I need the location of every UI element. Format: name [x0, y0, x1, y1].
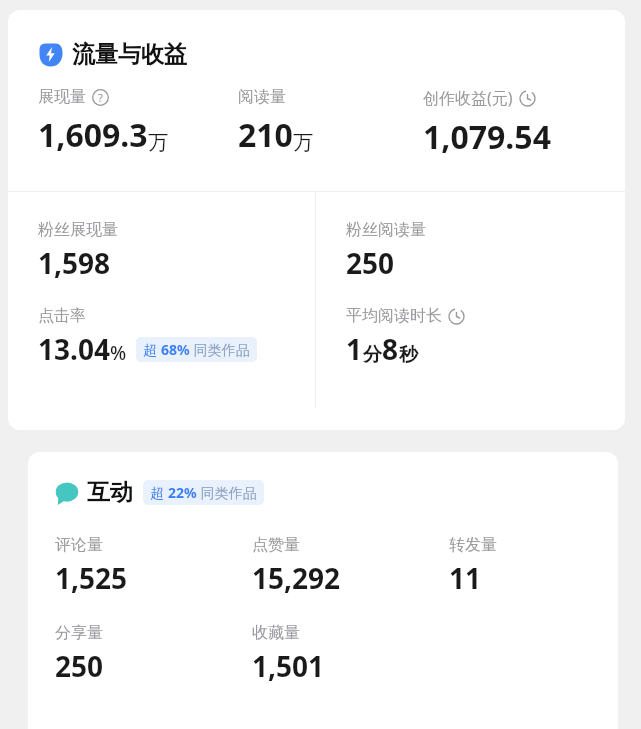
staticText: 同类作品 [197, 483, 257, 502]
button[interactable]: 超 [136, 337, 257, 362]
staticText: 评论量 [55, 535, 103, 555]
staticText: 粉丝阅读量 [346, 220, 426, 240]
staticText: 1,609.3 [38, 113, 148, 157]
staticText: 创作收益(元) [423, 87, 513, 109]
staticText: 1,598 [38, 244, 111, 282]
staticText: 粉丝展现量 [38, 220, 118, 240]
staticText: ? [98, 90, 103, 105]
staticText: 210 [238, 113, 293, 157]
staticText: 万 [293, 130, 313, 155]
staticText: 超 [143, 340, 161, 359]
button[interactable]: Traffic and revenue [8, 10, 625, 69]
button[interactable]: Interaction [55, 478, 264, 507]
staticText: 同类作品 [190, 340, 250, 359]
staticText: 1,079.54 [423, 115, 551, 159]
staticText: 1,525 [55, 559, 128, 597]
staticText: 万 [148, 130, 168, 155]
staticText: 250 [55, 647, 104, 685]
button[interactable]: Data update time [519, 90, 536, 107]
staticText: 超 [150, 483, 168, 502]
staticText: 平均阅读时长 [346, 306, 442, 326]
staticText: 秒 [399, 343, 418, 367]
staticText: 1 [346, 330, 363, 368]
staticText: 13.04 [38, 330, 110, 368]
staticText: 转发量 [449, 535, 497, 555]
staticText: 点击率 [38, 306, 86, 326]
staticText: % [110, 340, 127, 366]
staticText: 11 [449, 559, 482, 597]
staticText: 展现量 [38, 87, 86, 107]
staticText: 阅读量 [238, 87, 286, 107]
staticText: 1,501 [252, 647, 325, 685]
staticText: 流量与收益 [72, 40, 187, 69]
button[interactable]: Help [92, 89, 109, 106]
staticText: 收藏量 [252, 623, 300, 643]
staticText: 分 [363, 343, 382, 367]
other: Traffic and revenue [38, 42, 63, 67]
staticText: 8 [382, 330, 399, 368]
button[interactable]: 超 [143, 480, 264, 505]
button[interactable]: Data update time [448, 308, 465, 325]
staticText: 22% [168, 483, 197, 502]
staticText: 点赞量 [252, 535, 300, 555]
other: Interaction [55, 481, 79, 505]
staticText: 分享量 [55, 623, 103, 643]
staticText: 15,292 [252, 559, 341, 597]
staticText: 250 [346, 244, 395, 282]
staticText: 互动 [87, 478, 133, 507]
staticText: 68% [161, 340, 190, 359]
